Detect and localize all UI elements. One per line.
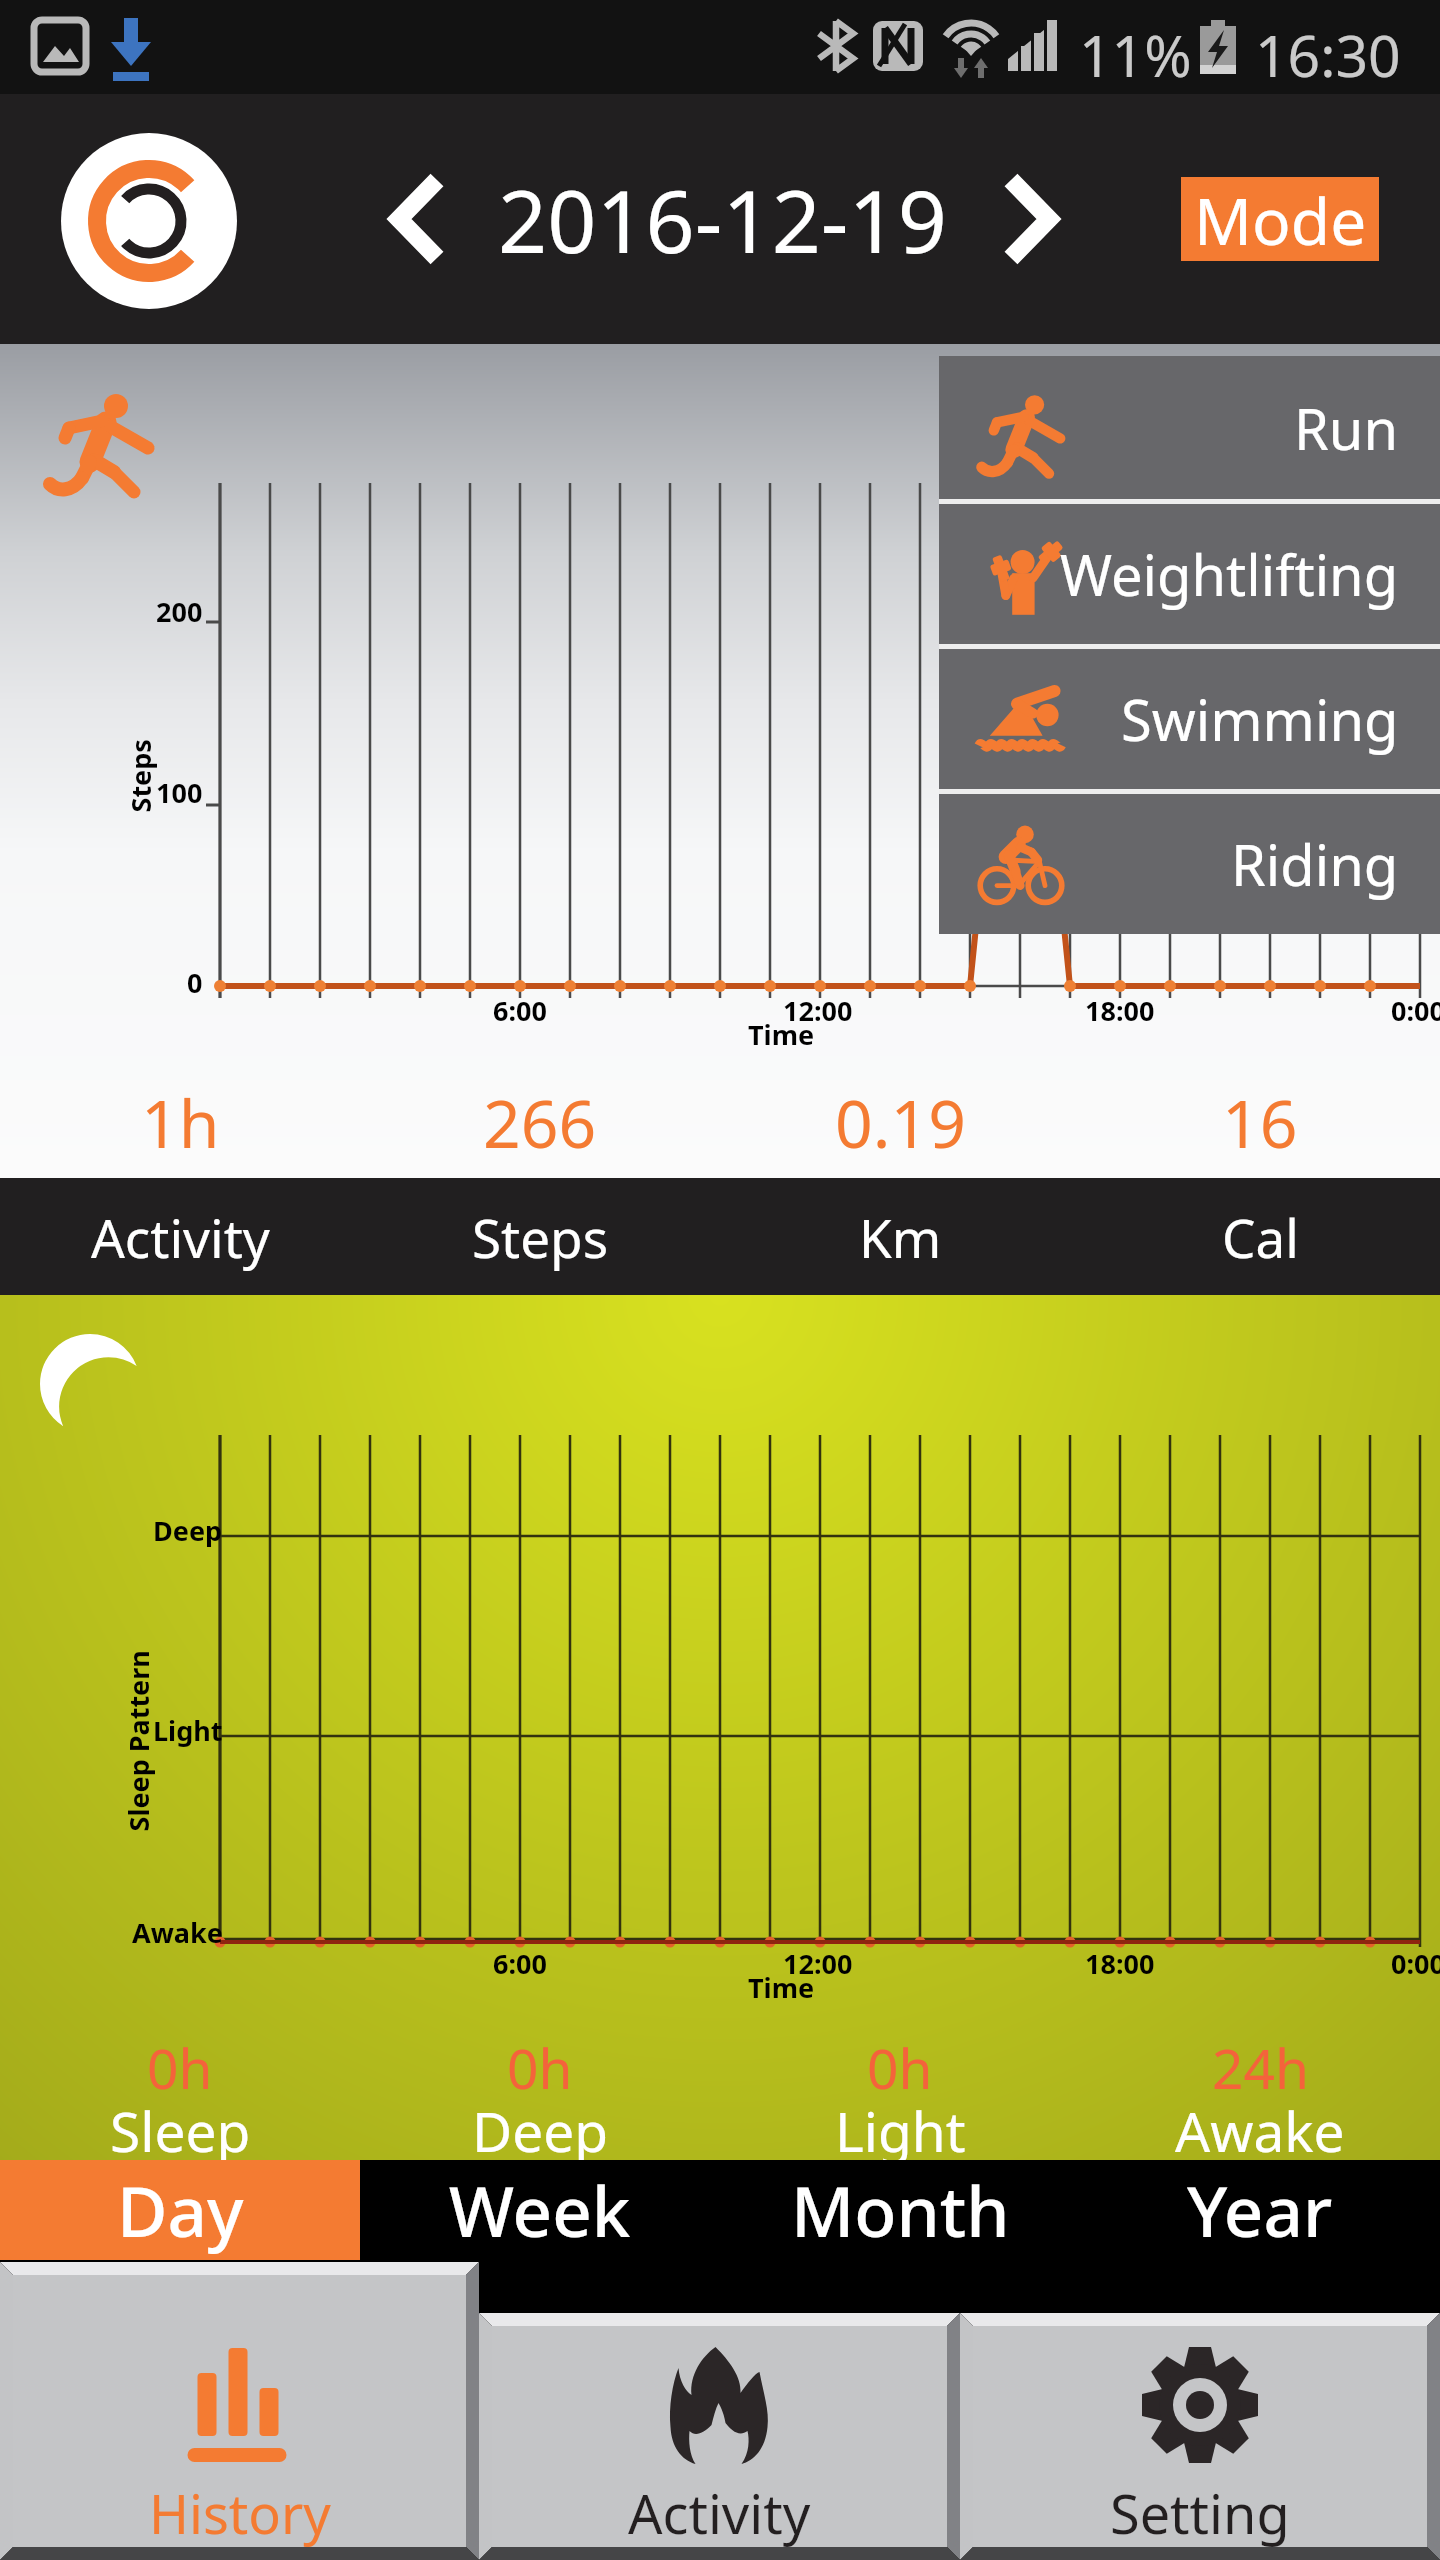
staticText: 16:30 — [1255, 16, 1401, 94]
button[interactable]: Month — [720, 2160, 1080, 2260]
button[interactable]: Weightlifting — [939, 504, 1440, 644]
button[interactable]: Setting — [960, 2313, 1440, 2560]
staticText: Awake — [1175, 2093, 1345, 2168]
staticText: 200 — [156, 593, 203, 630]
staticText: 12:00 — [783, 1945, 853, 1982]
staticText: Steps — [472, 1201, 609, 1273]
staticText: 11% — [1079, 16, 1192, 94]
staticText: 6:00 — [493, 1945, 547, 1982]
staticText: 100 — [156, 774, 203, 811]
staticText: 12:00 — [783, 992, 853, 1029]
staticText: Km — [859, 1201, 942, 1273]
button[interactable]: Previous day — [372, 160, 468, 278]
button[interactable]: History — [0, 2262, 479, 2560]
staticText: Mode — [1194, 177, 1367, 261]
staticText: Awake — [132, 1914, 223, 1951]
staticText: Deep — [472, 2093, 609, 2168]
button[interactable]: Run — [939, 356, 1440, 499]
button[interactable]: Riding — [939, 794, 1440, 934]
staticText: 24h — [1212, 2030, 1309, 2105]
staticText: 0h — [507, 2030, 573, 2105]
staticText: Weightlifting — [1060, 536, 1399, 612]
staticText: History — [149, 2476, 331, 2550]
staticText: 2016-12-19 — [498, 161, 947, 278]
staticText: Riding — [1231, 826, 1399, 902]
staticText: 0h — [147, 2030, 213, 2105]
staticText: Setting — [1110, 2476, 1290, 2550]
staticText: 266 — [483, 1077, 597, 1167]
button[interactable]: Day — [0, 2160, 360, 2260]
staticText: 0:00 — [1391, 1945, 1440, 1982]
staticText: 0h — [867, 2030, 933, 2105]
staticText: 0:00 — [1391, 992, 1440, 1029]
staticText: 1h — [141, 1077, 220, 1167]
staticText: 6:00 — [493, 992, 547, 1029]
staticText: Sleep — [110, 2093, 251, 2168]
staticText: 18:00 — [1085, 992, 1155, 1029]
button[interactable]: Mode — [1181, 177, 1379, 261]
staticText: 16 — [1222, 1077, 1298, 1167]
staticText: 0.19 — [835, 1077, 966, 1167]
staticText: Steps — [121, 738, 158, 812]
staticText: Activity — [91, 1201, 270, 1273]
staticText: Light — [835, 2093, 966, 2168]
staticText: Cal — [1222, 1201, 1299, 1273]
staticText: Swimming — [1121, 681, 1399, 757]
staticText: Year — [1187, 2163, 1333, 2257]
staticText: Light — [153, 1712, 223, 1749]
staticText: Run — [1294, 390, 1399, 466]
button[interactable]: Activity — [479, 2313, 960, 2560]
button[interactable]: Swimming — [939, 649, 1440, 789]
staticText: 0 — [187, 964, 203, 1001]
staticText: Time — [748, 1969, 815, 2006]
button[interactable]: App logo — [61, 133, 237, 309]
staticText: Month — [791, 2163, 1010, 2257]
staticText: 18:00 — [1085, 1945, 1155, 1982]
button[interactable]: Next day — [980, 160, 1076, 278]
button[interactable]: Week — [360, 2160, 720, 2260]
staticText: Time — [748, 1016, 815, 1053]
button[interactable]: Year — [1080, 2160, 1440, 2260]
staticText: Deep — [153, 1512, 223, 1549]
staticText: Week — [449, 2163, 631, 2257]
staticText: Activity — [628, 2476, 811, 2550]
staticText: Day — [117, 2163, 244, 2257]
staticText: Sleep Pattern — [119, 1649, 156, 1831]
